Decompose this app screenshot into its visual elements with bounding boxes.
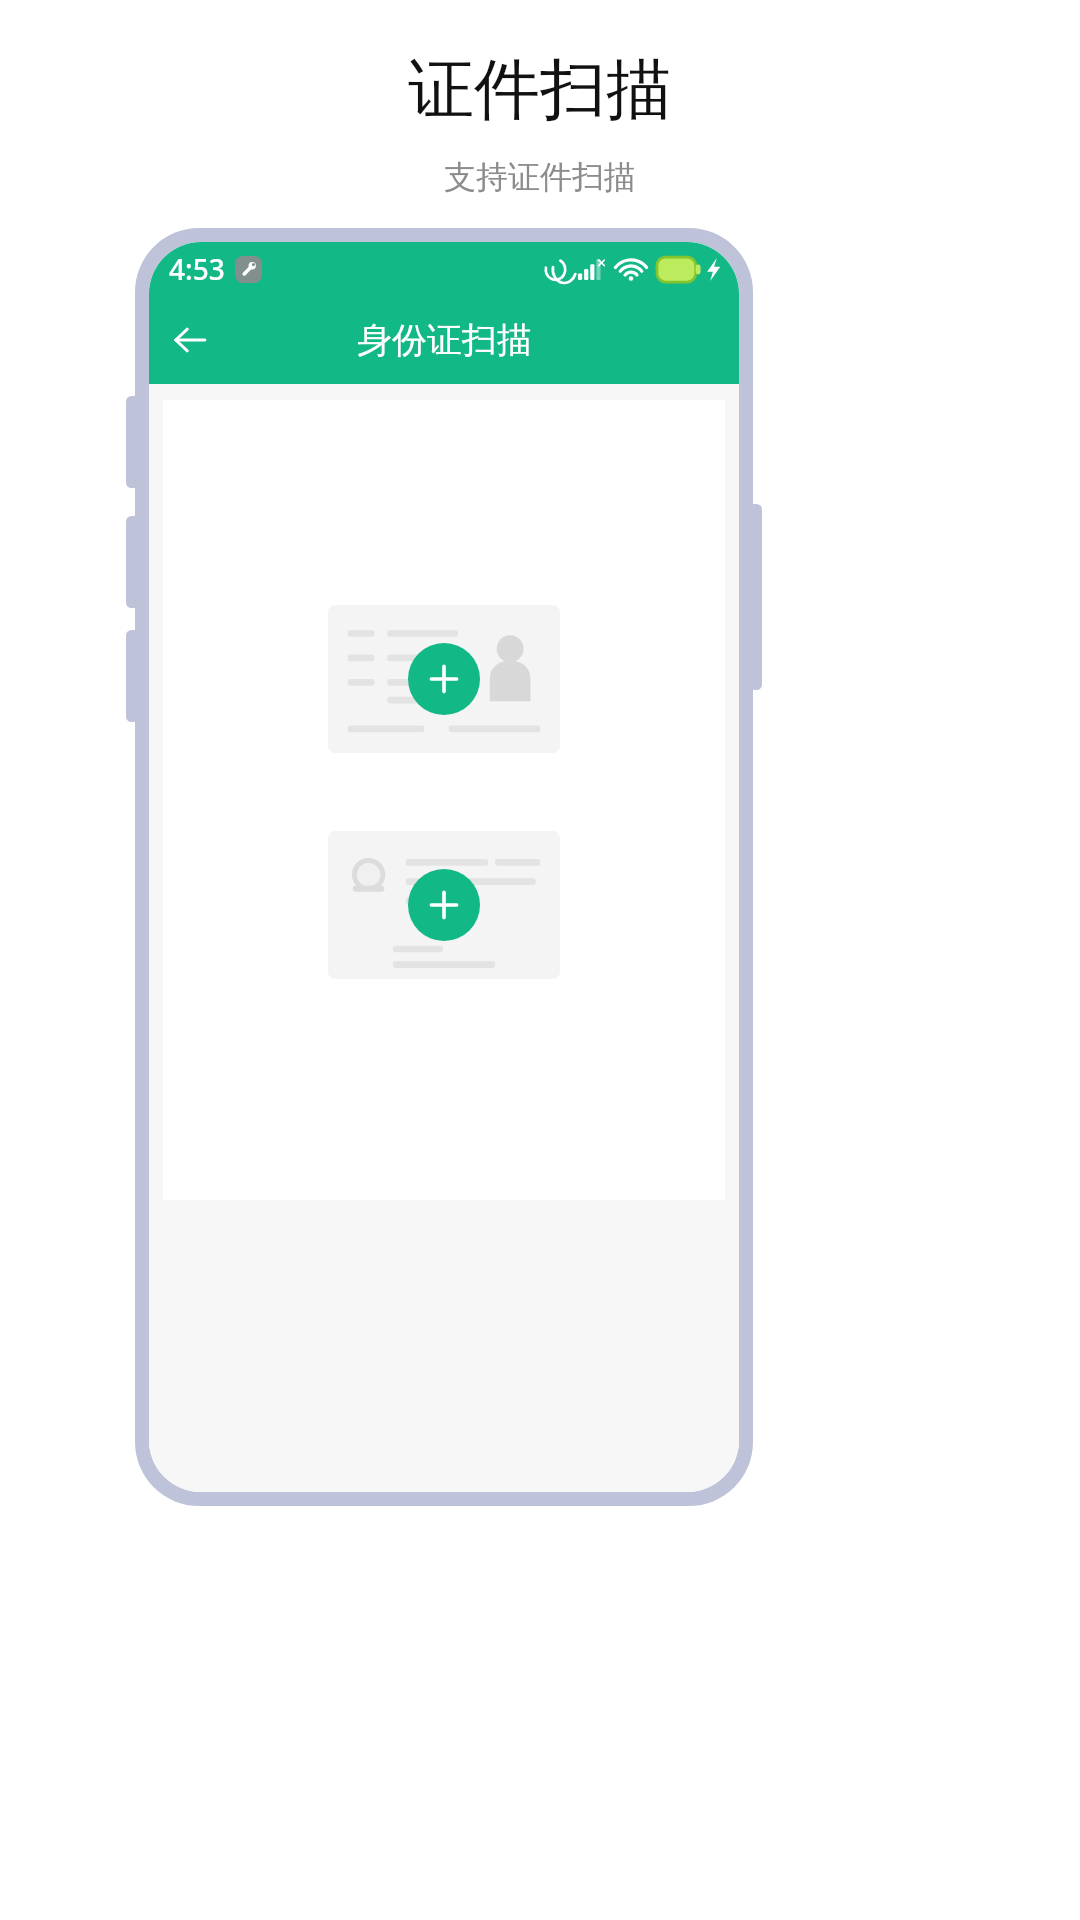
button[interactable]: Add front of ID	[408, 643, 480, 715]
button[interactable]: Add front of ID	[328, 605, 560, 753]
staticText: 证件扫描	[408, 48, 672, 131]
staticText: 身份证扫描	[357, 318, 532, 362]
button[interactable]: Back	[157, 307, 223, 373]
staticText: 4:53	[169, 250, 225, 288]
staticText: 支持证件扫描	[444, 157, 636, 197]
button[interactable]: Add back of ID	[328, 831, 560, 979]
button[interactable]: Add back of ID	[408, 869, 480, 941]
